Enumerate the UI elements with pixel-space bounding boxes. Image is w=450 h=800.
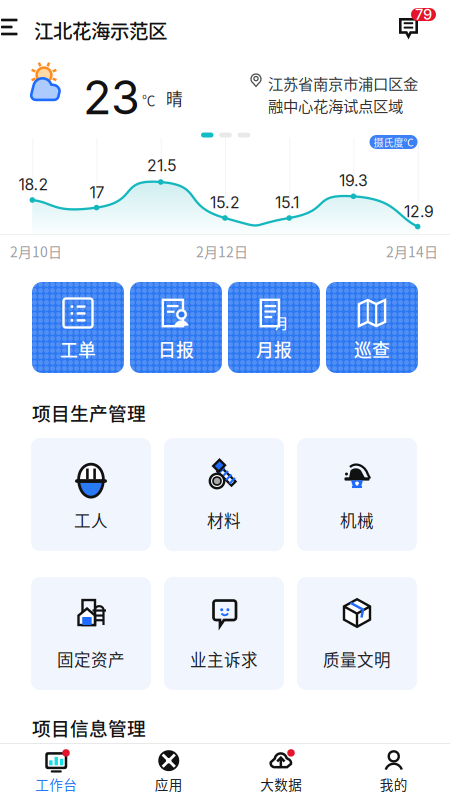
button[interactable]: 工单 [32, 282, 124, 373]
staticText: 2月14日 [386, 241, 438, 261]
staticText: 15.2 [210, 193, 240, 212]
staticText: 质量文明 [323, 647, 391, 671]
staticText: 大数据 [260, 774, 302, 794]
button[interactable]: 工作台 [0, 742, 112, 800]
staticText: 月 [275, 313, 288, 332]
staticText: 15.1 [275, 193, 299, 212]
button[interactable]: Menu [0, 0, 30, 54]
button[interactable]: 日报 [130, 282, 222, 373]
button[interactable]: 我的 [337, 742, 450, 800]
staticText: 月报 [256, 336, 292, 362]
staticText: 固定资产 [57, 647, 125, 671]
staticText: 工人 [74, 508, 108, 532]
staticText: 材料 [207, 508, 241, 532]
staticText: 机械 [340, 508, 374, 532]
button[interactable]: 材料 [164, 438, 284, 551]
staticText: 江北花海示范区 [34, 16, 167, 44]
staticText: 2月10日 [10, 241, 62, 261]
staticText: 巡查 [354, 336, 390, 362]
button[interactable]: 巡查 [326, 282, 418, 373]
button[interactable]: 月 [228, 282, 320, 373]
button[interactable]: 应用 [112, 742, 225, 800]
staticText: 79 [415, 6, 432, 23]
staticText: 工作台 [35, 774, 77, 794]
staticText: 18.2 [18, 175, 48, 194]
button[interactable]: 摄氏度℃ [369, 135, 417, 149]
button[interactable]: 固定资产 [31, 577, 151, 690]
staticText: 项目生产管理 [32, 399, 146, 426]
button[interactable]: 工人 [31, 438, 151, 551]
staticText: 21.5 [147, 156, 177, 175]
staticText: 23 [83, 69, 140, 125]
button[interactable]: 机械 [297, 438, 417, 551]
staticText: 江苏省南京市浦口区金融中心花海试点区域 [268, 72, 418, 116]
staticText: 应用 [155, 774, 183, 794]
staticText: 12.9 [404, 202, 434, 221]
staticText: ℃ [142, 90, 155, 109]
staticText: 工单 [60, 336, 96, 362]
button[interactable]: 业主诉求 [164, 577, 284, 690]
staticText: 业主诉求 [190, 647, 258, 671]
staticText: 摄氏度℃ [373, 135, 413, 149]
staticText: 项目信息管理 [32, 714, 146, 741]
staticText: 我的 [380, 774, 408, 794]
staticText: 日报 [158, 336, 194, 362]
button[interactable]: 质量文明 [297, 577, 417, 690]
staticText: 17 [89, 183, 104, 202]
staticText: 2月12日 [196, 241, 248, 261]
button[interactable]: 大数据 [225, 742, 337, 800]
staticText: 晴 [166, 86, 183, 110]
staticText: 19.3 [339, 171, 368, 190]
button[interactable]: Messages [389, 0, 441, 48]
